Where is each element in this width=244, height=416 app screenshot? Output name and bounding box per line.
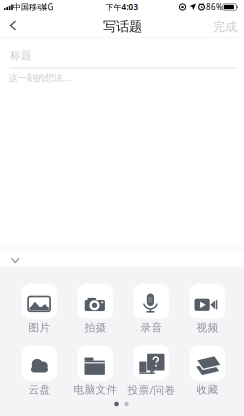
staticText: 这一刻的想法... (8, 71, 71, 84)
staticText: 图片 (28, 321, 50, 334)
staticText: 4G (42, 2, 53, 12)
staticText: 收藏 (196, 383, 218, 396)
button[interactable]: 图片 (22, 284, 57, 334)
button[interactable]: 拍摄 (78, 284, 113, 334)
staticText: 下午4:03 (105, 2, 138, 12)
staticText: 中国移动 (13, 2, 45, 12)
staticText: 完成 (213, 19, 237, 34)
staticText: 云盘 (28, 383, 50, 396)
staticText: 视频 (196, 321, 218, 334)
button[interactable]: 收起 (5, 252, 25, 269)
button[interactable]: 云盘 (22, 346, 57, 396)
staticText: 标题 (10, 49, 32, 62)
button[interactable]: 完成 (207, 14, 243, 39)
button[interactable]: 返回 (3, 14, 25, 37)
staticText: 86% (206, 2, 223, 12)
staticText: 写话题 (103, 18, 142, 35)
staticText: 拍摄 (84, 321, 106, 334)
button[interactable]: 电脑文件 (73, 346, 117, 396)
button[interactable]: 收藏 (190, 346, 225, 396)
button[interactable]: 录音 (134, 284, 169, 334)
button[interactable]: 视频 (190, 284, 225, 334)
staticText: 电脑文件 (73, 383, 117, 396)
button[interactable]: 投票/问卷 (127, 345, 175, 397)
staticText: 录音 (140, 321, 162, 334)
staticText: 投票/问卷 (127, 383, 175, 397)
